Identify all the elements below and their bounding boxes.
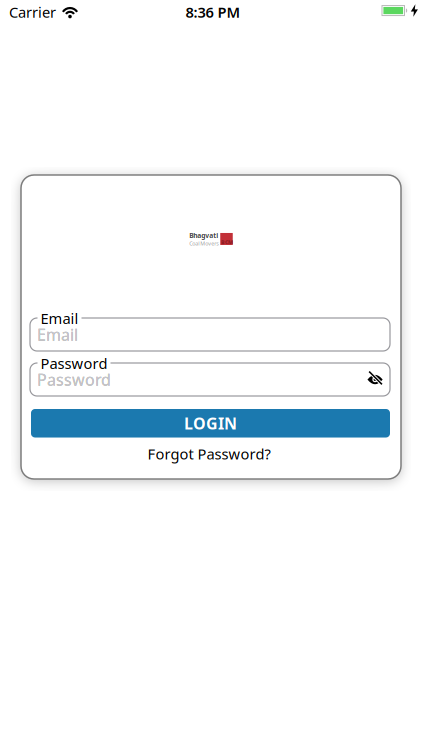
- staticText: Carrier: [9, 2, 56, 22]
- textField[interactable]: Email: [37, 324, 212, 345]
- staticText: Email: [37, 324, 78, 345]
- staticText: Password: [37, 369, 111, 390]
- staticText: Forgot Password?: [147, 444, 270, 463]
- staticText: Password: [40, 353, 107, 373]
- staticText: Coal Movers: [189, 240, 219, 247]
- staticText: Bhagvati: [189, 231, 218, 240]
- textField[interactable]: Password: [37, 369, 200, 390]
- button[interactable]: Forgot Password?: [19, 444, 399, 463]
- staticText: BCM: [221, 239, 233, 246]
- button[interactable]: Show password: [363, 369, 387, 389]
- staticText: Email: [40, 308, 78, 328]
- staticText: Password: [37, 369, 111, 390]
- button[interactable]: LOGIN: [31, 409, 390, 437]
- staticText: LOGIN: [184, 413, 237, 434]
- staticText: 8:36 PM: [185, 2, 240, 22]
- staticText: Email: [37, 324, 78, 345]
